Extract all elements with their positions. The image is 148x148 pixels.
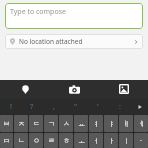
button[interactable]: ' <box>87 98 109 115</box>
staticText: Type to compose <box>10 7 66 17</box>
staticText: ㅂ <box>3 119 10 128</box>
button[interactable]: ㅕ <box>89 115 103 132</box>
button[interactable]: ㅏ <box>104 133 118 148</box>
button[interactable]: ㅁ <box>0 133 13 148</box>
staticText: : <box>119 102 121 112</box>
button[interactable]: ㅇ <box>29 133 43 148</box>
staticText: ㅇ <box>33 136 40 145</box>
staticText: ㅗ <box>78 136 85 145</box>
button[interactable]: : <box>109 98 131 115</box>
button[interactable]: Type to compose <box>5 3 143 29</box>
staticText: ㅓ <box>93 136 100 145</box>
staticText: ㄱ <box>48 119 55 128</box>
button[interactable]: ㄹ <box>44 133 58 148</box>
button[interactable]: , <box>43 98 65 115</box>
staticText: ㅈ <box>18 119 25 128</box>
button[interactable]: ㅗ <box>74 133 88 148</box>
button[interactable]: No location attached <box>5 34 143 49</box>
button[interactable]: ㄱ <box>44 115 58 132</box>
button[interactable]: ㄴ <box>14 133 28 148</box>
staticText: No location attached <box>19 37 83 46</box>
button[interactable]: ? <box>21 98 43 115</box>
staticText: ㅔ <box>138 119 145 128</box>
button[interactable]: ㅎ <box>59 133 73 148</box>
button[interactable]: ㅓ <box>89 133 103 148</box>
staticText: ㅕ <box>93 119 100 128</box>
button[interactable]: ㅛ <box>74 115 88 132</box>
staticText: ' <box>97 102 99 112</box>
staticText: ㅎ <box>63 136 70 145</box>
button[interactable]: Attach location <box>0 80 50 98</box>
staticText: , <box>53 102 55 112</box>
button[interactable]: Gallery <box>99 80 148 98</box>
staticText: ㅛ <box>78 119 85 128</box>
button[interactable]: ㅣ <box>119 133 133 148</box>
button[interactable]: · <box>134 133 148 148</box>
staticText: ㅣ <box>123 136 130 145</box>
button[interactable]: ㅂ <box>0 115 13 132</box>
staticText: ㄹ <box>48 136 55 145</box>
staticText: ? <box>30 102 34 112</box>
button[interactable]: ㅅ <box>59 115 73 132</box>
staticText: · <box>140 136 142 146</box>
staticText: ㅁ <box>3 136 10 145</box>
staticText: ㅐ <box>123 119 130 128</box>
button[interactable]: " <box>65 98 87 115</box>
staticText: ㄷ <box>33 119 40 128</box>
button[interactable]: ㅑ <box>104 115 118 132</box>
staticText: ! <box>10 102 12 112</box>
staticText: ㅑ <box>108 119 115 128</box>
staticText: ㅏ <box>108 136 115 145</box>
staticText: ㅅ <box>63 119 70 128</box>
button[interactable]: ㄷ <box>29 115 43 132</box>
button[interactable]: ㅔ <box>134 115 148 132</box>
staticText: " <box>74 102 78 112</box>
staticText: ㄴ <box>18 136 25 145</box>
button[interactable]: More symbols <box>131 98 148 115</box>
button[interactable]: ㅈ <box>14 115 28 132</box>
button[interactable]: Camera <box>50 80 99 98</box>
button[interactable]: ! <box>0 98 21 115</box>
button[interactable]: ㅐ <box>119 115 133 132</box>
